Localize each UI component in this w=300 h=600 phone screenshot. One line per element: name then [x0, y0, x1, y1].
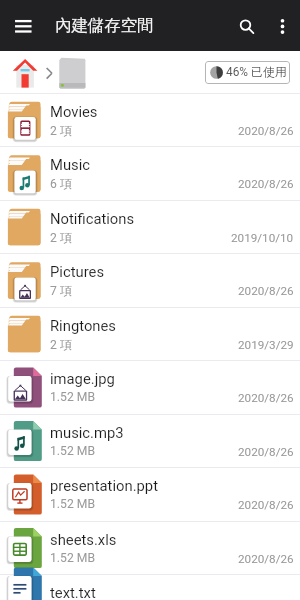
- button[interactable]: sheets.xls: [0, 522, 300, 574]
- staticText: 1.52 MB: [50, 551, 96, 565]
- staticText: 2019/3/29: [238, 338, 294, 352]
- staticText: 46% 已使用: [226, 65, 287, 80]
- staticText: 7 項: [50, 283, 73, 298]
- button[interactable]: Internal storage: [54, 51, 90, 93]
- staticText: Ringtones: [50, 317, 116, 334]
- button[interactable]: 46% 已使用: [205, 61, 290, 84]
- button[interactable]: Search: [225, 7, 263, 45]
- staticText: presentation.ppt: [50, 477, 158, 494]
- staticText: music.mp3: [50, 424, 124, 441]
- staticText: image.jpg: [50, 370, 115, 387]
- staticText: 1.52 MB: [50, 444, 96, 458]
- staticText: 2020/8/26: [238, 391, 294, 405]
- staticText: 2020/8/26: [238, 284, 294, 298]
- staticText: 2 項: [50, 230, 73, 245]
- button[interactable]: presentation.ppt: [0, 468, 300, 521]
- staticText: 2020/8/26: [238, 552, 294, 566]
- staticText: 2020/8/26: [238, 445, 294, 459]
- staticText: 內建儲存空間: [55, 15, 154, 36]
- staticText: Music: [50, 156, 91, 173]
- button[interactable]: Navigation menu: [1, 4, 45, 48]
- staticText: 2020/8/26: [238, 498, 294, 512]
- button[interactable]: Music: [0, 147, 300, 200]
- staticText: Movies: [50, 103, 98, 120]
- button[interactable]: More options: [262, 7, 300, 45]
- button[interactable]: Notifications: [0, 201, 300, 253]
- staticText: 1.52 MB: [50, 497, 96, 511]
- staticText: 2 項: [50, 337, 73, 352]
- staticText: 6 項: [50, 176, 73, 191]
- button[interactable]: Pictures: [0, 254, 300, 307]
- button[interactable]: Ringtones: [0, 308, 300, 360]
- staticText: Pictures: [50, 263, 105, 280]
- button[interactable]: Home: [5, 51, 45, 93]
- staticText: 2 項: [50, 123, 73, 138]
- staticText: sheets.xls: [50, 531, 117, 548]
- button[interactable]: Movies: [0, 94, 300, 146]
- button[interactable]: image.jpg: [0, 361, 300, 414]
- staticText: 2020/8/26: [238, 177, 294, 191]
- staticText: Notifications: [50, 210, 135, 227]
- button[interactable]: text.txt: [0, 575, 300, 600]
- staticText: 1.52 MB: [50, 390, 96, 404]
- staticText: 2020/8/26: [238, 124, 294, 138]
- staticText: 2019/10/10: [231, 231, 294, 245]
- staticText: text.txt: [50, 584, 96, 600]
- button[interactable]: music.mp3: [0, 415, 300, 467]
